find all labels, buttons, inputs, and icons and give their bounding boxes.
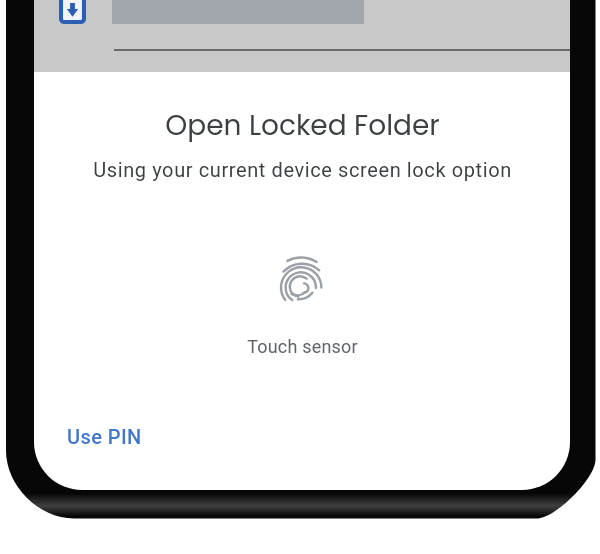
staticText: Using your current device screen lock op… [93,158,512,181]
staticText: Touch sensor [247,336,358,357]
button[interactable]: Use PIN [55,419,154,454]
staticText: Use PIN [67,425,142,448]
staticText: Open Locked Folder [165,106,440,145]
button[interactable]: Download [59,0,86,24]
